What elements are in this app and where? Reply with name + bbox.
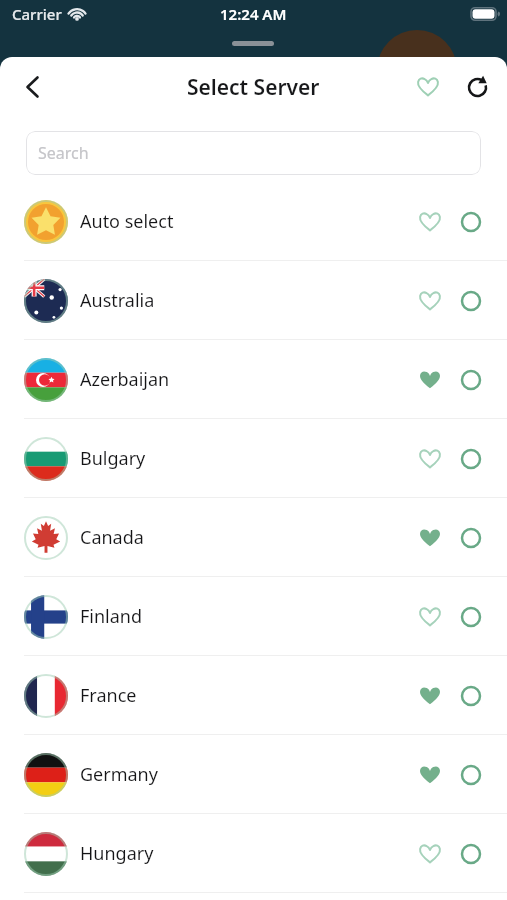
staticText: Bulgary xyxy=(80,446,417,471)
staticText: France xyxy=(80,683,417,708)
button[interactable]: Australia xyxy=(0,261,507,340)
button[interactable]: Azerbaijan xyxy=(0,340,507,419)
button[interactable] xyxy=(417,209,443,235)
staticText: Australia xyxy=(80,288,417,313)
button[interactable] xyxy=(464,74,490,100)
button[interactable] xyxy=(459,210,483,234)
button[interactable]: Search xyxy=(26,131,481,175)
staticText: Germany xyxy=(80,762,417,787)
staticText: Select Server xyxy=(187,73,320,102)
staticText: Azerbaijan xyxy=(80,367,417,392)
button[interactable] xyxy=(415,74,441,100)
button[interactable] xyxy=(18,73,46,101)
button[interactable]: France xyxy=(0,656,507,735)
button[interactable] xyxy=(459,842,483,866)
staticText: Canada xyxy=(80,525,417,550)
button[interactable] xyxy=(459,684,483,708)
button[interactable] xyxy=(459,763,483,787)
button[interactable]: Bulgary xyxy=(0,419,507,498)
button[interactable] xyxy=(459,368,483,392)
button[interactable] xyxy=(417,604,443,630)
button[interactable] xyxy=(459,526,483,550)
button[interactable] xyxy=(417,367,443,393)
staticText: Search xyxy=(38,142,89,164)
button[interactable] xyxy=(417,841,443,867)
button[interactable] xyxy=(459,605,483,629)
staticText: Finland xyxy=(80,604,417,629)
button[interactable] xyxy=(417,288,443,314)
button[interactable] xyxy=(459,289,483,313)
staticText: Auto select xyxy=(80,209,417,234)
staticText: Hungary xyxy=(80,841,417,866)
button[interactable]: Auto select xyxy=(0,182,507,261)
button[interactable] xyxy=(417,446,443,472)
button[interactable]: Canada xyxy=(0,498,507,577)
button[interactable] xyxy=(417,683,443,709)
staticText: 12:24 AM xyxy=(220,4,287,24)
button[interactable]: Finland xyxy=(0,577,507,656)
button[interactable] xyxy=(417,525,443,551)
button[interactable]: Hungary xyxy=(0,814,507,893)
button[interactable]: Germany xyxy=(0,735,507,814)
button[interactable] xyxy=(459,447,483,471)
button[interactable] xyxy=(417,762,443,788)
staticText: Carrier xyxy=(12,4,62,24)
